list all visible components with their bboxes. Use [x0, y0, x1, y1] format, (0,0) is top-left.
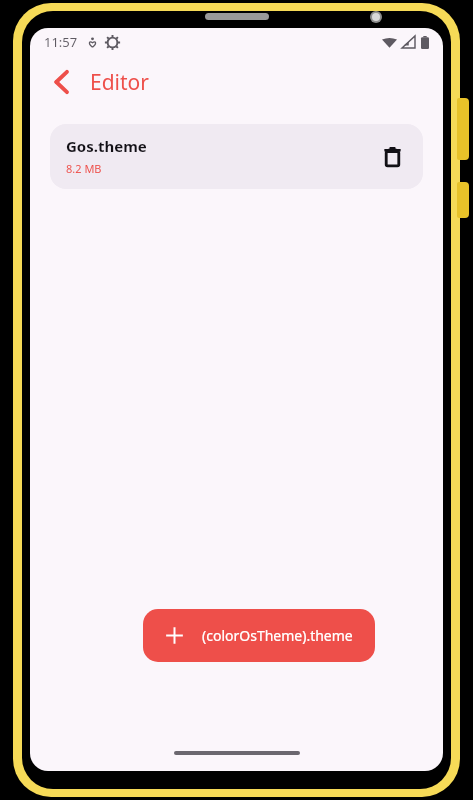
button[interactable]: Gos.theme [50, 124, 423, 189]
staticText: 8.2 MB [66, 161, 102, 176]
button[interactable]: (colorOsTheme).theme [143, 609, 375, 662]
button[interactable]: Delete theme [375, 139, 409, 173]
staticText: Gos.theme [66, 136, 147, 156]
staticText: 11:57 [44, 33, 78, 51]
button[interactable]: Back [44, 65, 78, 99]
staticText: (colorOsTheme).theme [202, 626, 353, 645]
staticText: Editor [90, 68, 149, 97]
